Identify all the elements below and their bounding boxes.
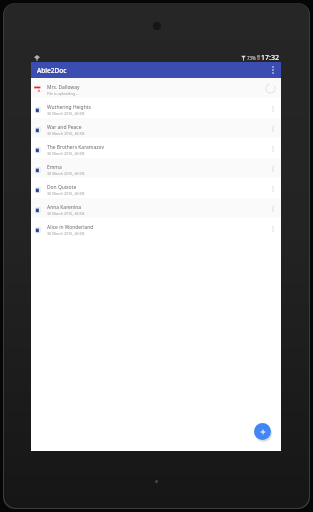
button[interactable]: Add document <box>254 423 271 440</box>
staticText: Able2Doc <box>37 66 67 75</box>
button[interactable]: Emma <box>31 158 281 178</box>
staticText: Don Quixote <box>47 184 77 191</box>
staticText: 30 March 2016, 46 KB <box>47 171 85 176</box>
staticText: File is uploading ... <box>47 91 80 96</box>
button[interactable]: Item options <box>264 102 281 115</box>
staticText: Emma <box>47 164 62 171</box>
button[interactable]: War and Peace <box>31 118 281 138</box>
staticText: War and Peace <box>47 124 82 131</box>
button[interactable]: Alice in Wonderland <box>31 218 281 238</box>
button[interactable]: More options <box>264 62 281 78</box>
button[interactable]: Item options <box>264 222 281 235</box>
staticText: 30 March 2016, 46 KB <box>47 111 85 116</box>
staticText: 30 March 2016, 46 KB <box>47 191 85 196</box>
staticText: Wuthering Heights <box>47 104 91 111</box>
staticText: Mrs. Dalloway <box>47 84 80 91</box>
button[interactable]: The Brothers Karamazov <box>31 138 281 158</box>
button[interactable]: Item options <box>264 122 281 135</box>
button[interactable]: Wuthering Heights <box>31 98 281 118</box>
button[interactable]: Item options <box>264 182 281 195</box>
button[interactable]: Item options <box>264 162 281 175</box>
staticText: 30 March 2016, 46 KB <box>47 131 85 136</box>
staticText: 17:32 <box>261 53 279 62</box>
staticText: 73% <box>247 55 256 61</box>
staticText: 30 March 2016, 46 KB <box>47 151 85 156</box>
button[interactable]: Item options <box>264 142 281 155</box>
staticText: Alice in Wonderland <box>47 224 94 231</box>
staticText: 30 March 2016, 46 KB <box>47 211 85 216</box>
staticText: The Brothers Karamazov <box>47 144 104 151</box>
staticText: Anna Karenina <box>47 204 82 211</box>
button[interactable]: Item options <box>264 202 281 215</box>
staticText: 30 March 2016, 46 KB <box>47 231 85 236</box>
button[interactable]: Mrs. Dalloway <box>31 78 281 98</box>
button[interactable]: Anna Karenina <box>31 198 281 218</box>
button[interactable]: Don Quixote <box>31 178 281 198</box>
